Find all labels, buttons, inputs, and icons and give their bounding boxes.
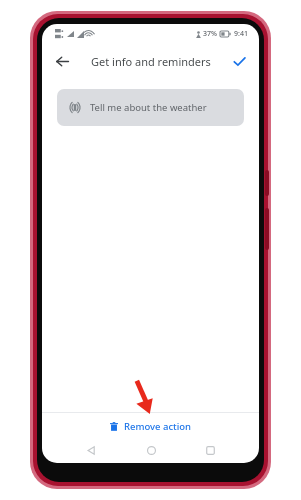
button[interactable]: Done — [226, 48, 252, 74]
button[interactable]: Recents — [199, 439, 221, 461]
staticText: Get info and reminders — [91, 54, 211, 69]
button[interactable]: Back — [49, 48, 75, 74]
button[interactable]: Back — [80, 439, 102, 461]
button[interactable]: Remove action — [42, 413, 259, 439]
staticText: Remove action — [124, 420, 192, 433]
staticText: Tell me about the weather — [90, 101, 207, 114]
staticText: 9:41 — [234, 29, 248, 39]
staticText: 37% — [203, 29, 217, 39]
button[interactable]: Home — [140, 439, 162, 461]
button[interactable]: Tell me about the weather — [57, 89, 244, 126]
